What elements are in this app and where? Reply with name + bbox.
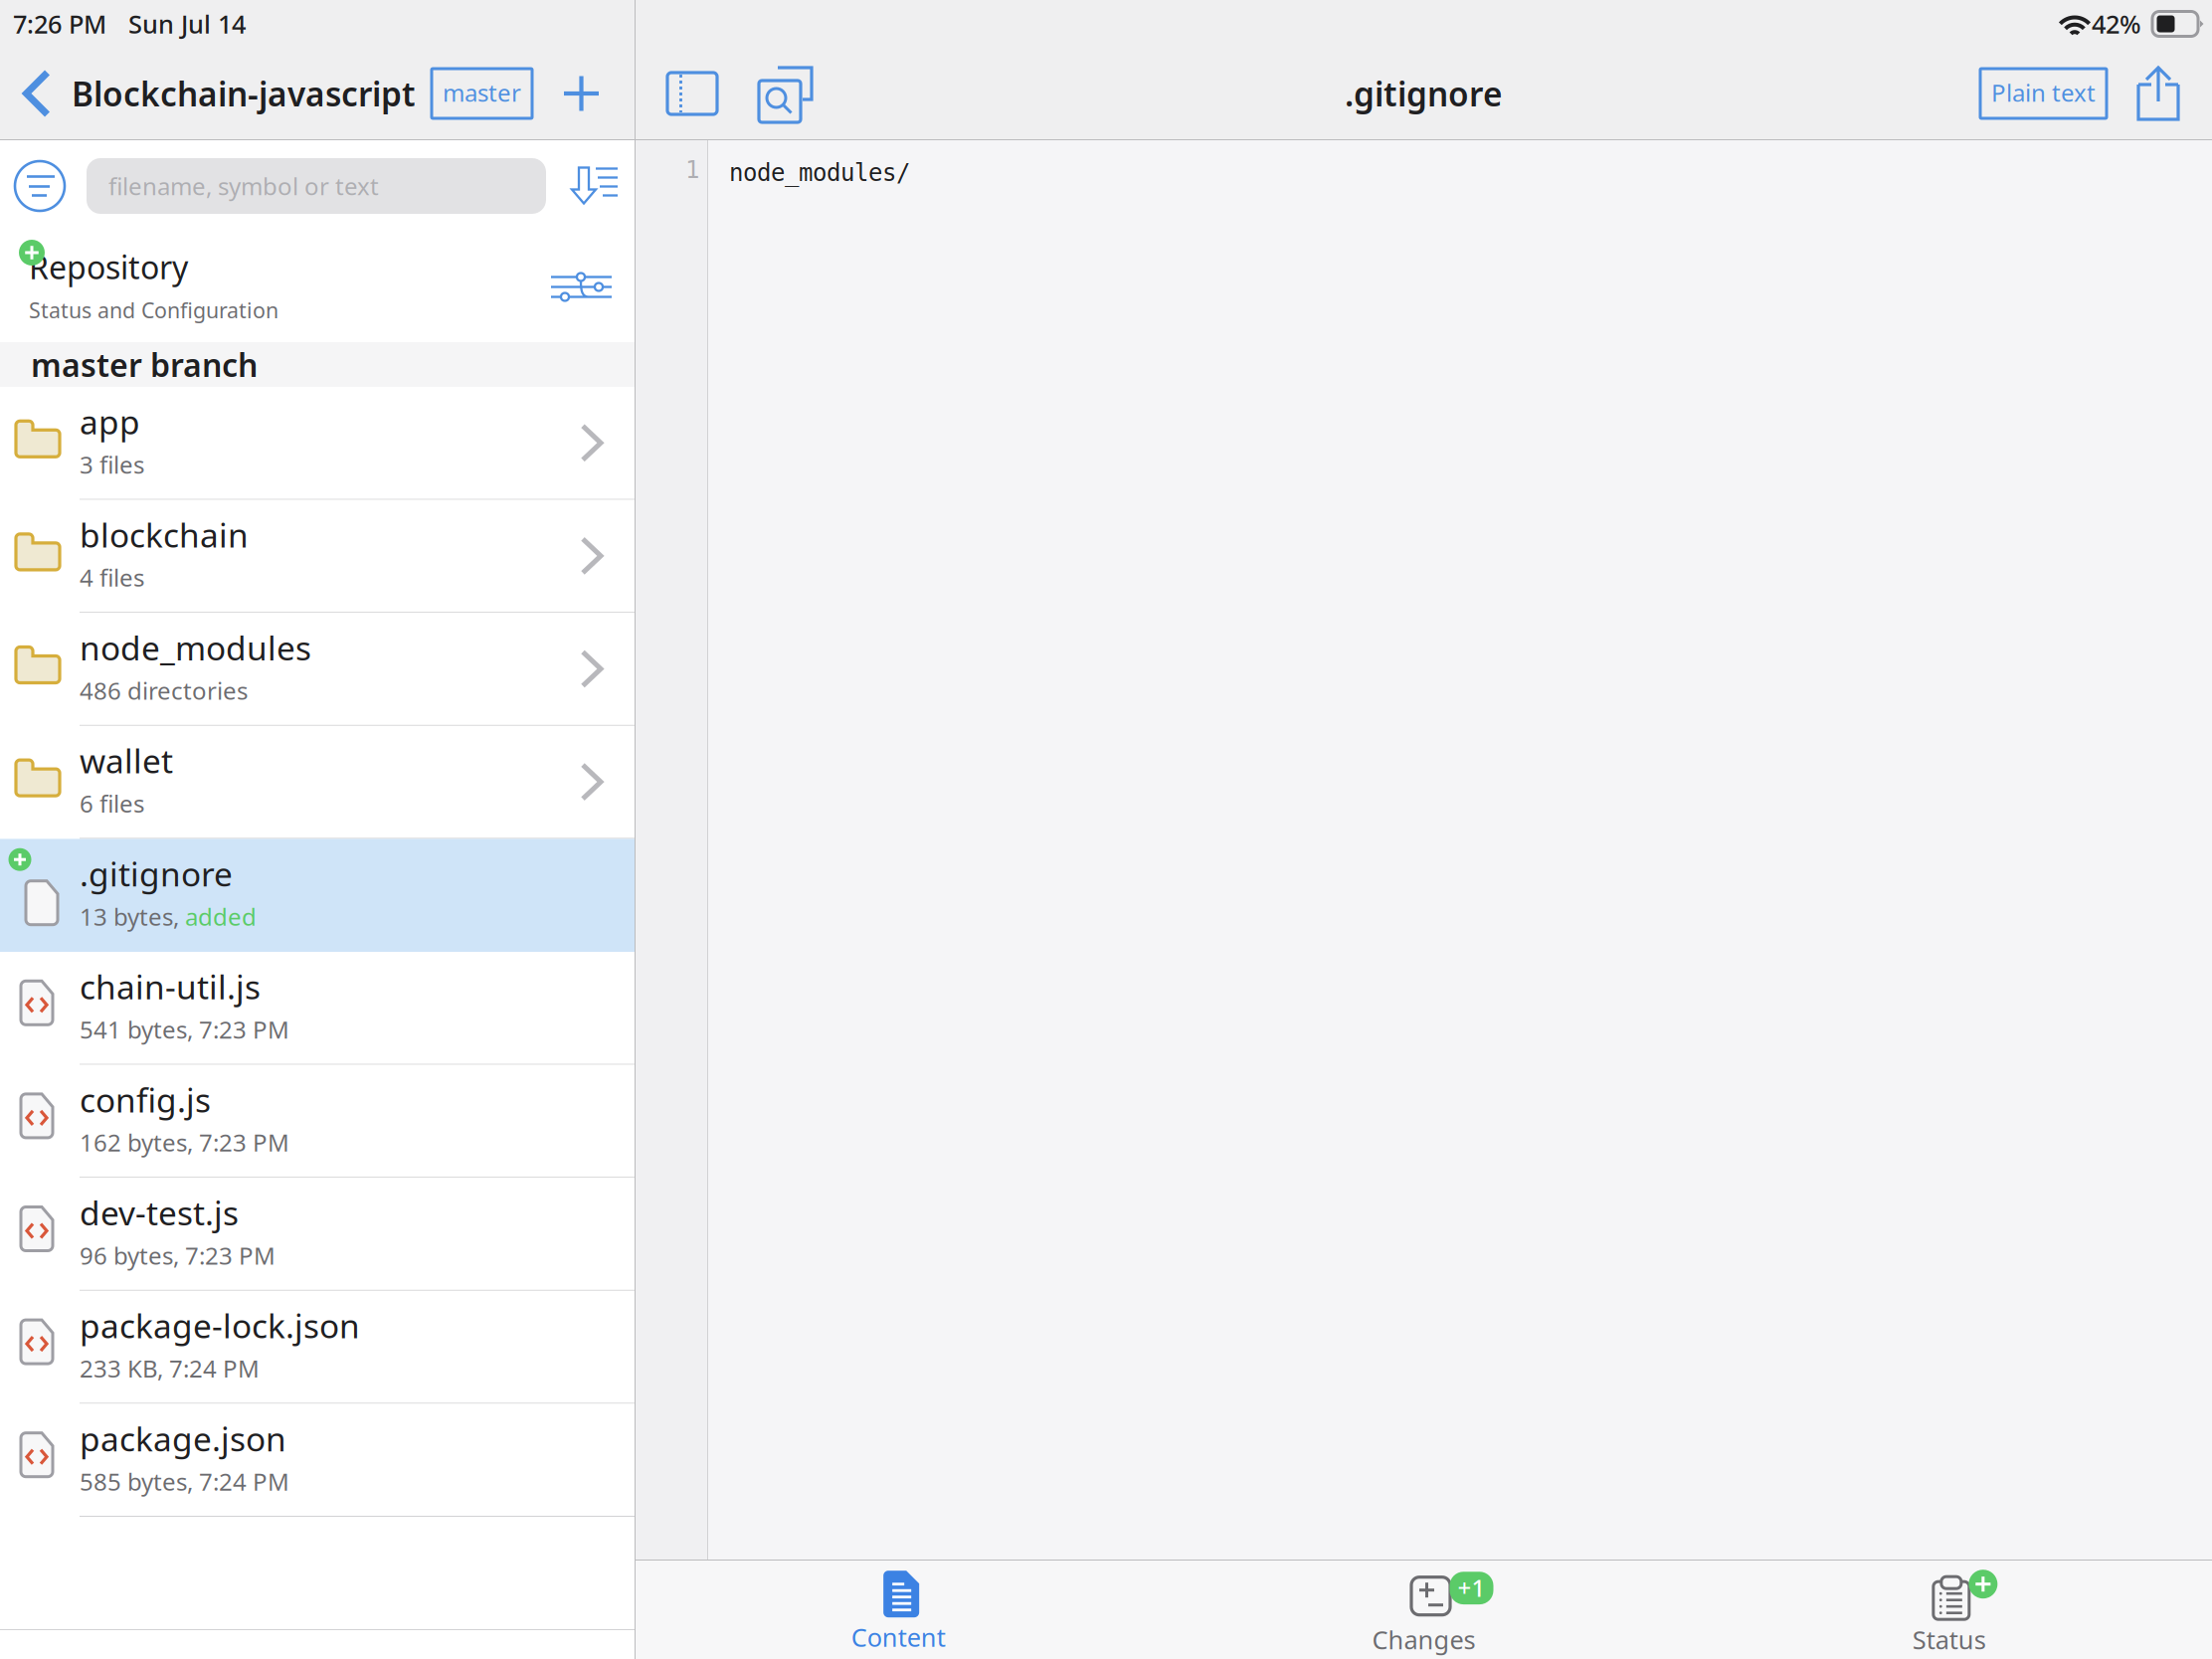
staticText: 6 files [80, 788, 144, 819]
staticText: .gitignore [80, 851, 233, 896]
button[interactable]: filename, symbol or text [87, 158, 546, 214]
staticText: chain-util.js [80, 964, 261, 1009]
button[interactable]: dev-test.js [0, 1178, 635, 1291]
staticText: 7:26 PM [13, 7, 106, 41]
staticText: filename, symbol or text [108, 170, 379, 202]
staticText: Content [851, 1620, 946, 1654]
staticText: package-lock.json [80, 1303, 360, 1347]
staticText: wallet [80, 738, 173, 783]
staticText: 233 KB, 7:24 PM [80, 1352, 260, 1384]
staticText: 42% [2092, 7, 2141, 41]
button[interactable]: Repository [0, 232, 635, 342]
staticText: +1 [1458, 1572, 1485, 1603]
button[interactable]: package-lock.json [0, 1291, 635, 1404]
button[interactable]: master [432, 69, 532, 118]
button[interactable]: Filter [15, 161, 65, 211]
staticText: 162 bytes, 7:23 PM [80, 1126, 289, 1158]
button[interactable]: config.js [0, 1065, 635, 1178]
staticText: dev-test.js [80, 1190, 239, 1235]
button[interactable]: Plain text [1980, 69, 2107, 118]
staticText: Status and Configuration [29, 296, 278, 324]
staticText: Repository [29, 246, 188, 288]
staticText: 1 [685, 156, 699, 183]
staticText: config.js [80, 1077, 211, 1122]
staticText: Sun Jul 14 [128, 7, 246, 41]
button[interactable]: node_modules [0, 613, 635, 726]
staticText: node_modules/ [729, 159, 910, 186]
button[interactable]: chain-util.js [0, 952, 635, 1065]
button[interactable]: wallet [0, 726, 635, 839]
button[interactable]: Share [2126, 56, 2190, 131]
staticText: master branch [31, 343, 258, 386]
staticText: .gitignore [1345, 72, 1503, 116]
button[interactable]: Search in files [751, 60, 819, 127]
button[interactable]: Status [1687, 1561, 2212, 1659]
staticText: Changes [1372, 1623, 1475, 1656]
staticText: 4 files [80, 562, 144, 593]
staticText: blockchain [80, 513, 249, 557]
staticText: 486 directories [80, 675, 248, 706]
button[interactable]: app [0, 387, 635, 500]
button[interactable]: package.json [0, 1404, 635, 1517]
staticText: Plain text [1991, 77, 2096, 108]
button[interactable]: Sort order [572, 168, 618, 204]
staticText: master [443, 77, 521, 108]
button[interactable]: Content [636, 1561, 1161, 1659]
button[interactable]: .gitignore [0, 839, 635, 952]
staticText: package.json [80, 1416, 286, 1460]
button[interactable]: blockchain [0, 500, 635, 613]
staticText: Blockchain-javascript [72, 72, 416, 116]
button[interactable]: Back [14, 66, 60, 121]
button[interactable]: Toggle Sidebar [657, 63, 727, 124]
staticText: 13 bytes, [80, 901, 185, 932]
staticText: 3 files [80, 449, 144, 480]
button[interactable]: Add [548, 60, 615, 127]
staticText: added [185, 901, 257, 932]
staticText: 96 bytes, 7:23 PM [80, 1239, 276, 1271]
staticText: 585 bytes, 7:24 PM [80, 1465, 289, 1497]
staticText: app [80, 400, 140, 444]
staticText: 541 bytes, 7:23 PM [80, 1014, 289, 1045]
button[interactable]: +1 [1161, 1561, 1686, 1659]
staticText: node_modules [80, 626, 311, 670]
staticText: Status [1912, 1623, 1986, 1656]
